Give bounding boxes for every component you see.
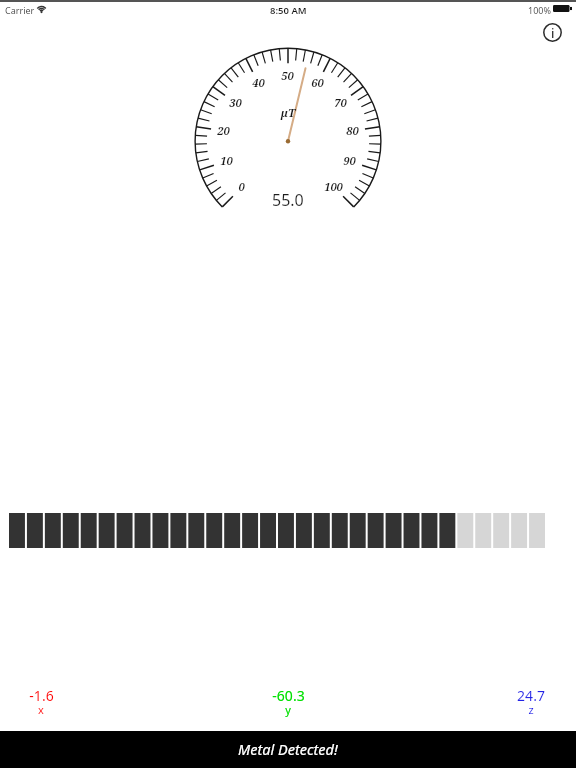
staticText: i: [551, 24, 555, 42]
staticText: -60.3: [272, 686, 305, 705]
staticText: 50: [281, 68, 294, 83]
staticText: y: [285, 702, 291, 717]
staticText: Carrier: [5, 4, 35, 16]
staticText: 100: [324, 179, 343, 194]
staticText: 40: [252, 75, 265, 90]
staticText: 80: [346, 123, 359, 138]
staticText: 100%: [528, 4, 551, 16]
staticText: Metal Detected!: [238, 739, 338, 759]
staticText: μT: [281, 105, 296, 120]
staticText: 20: [217, 123, 230, 138]
staticText: 30: [229, 95, 242, 110]
staticText: 90: [343, 153, 356, 168]
button[interactable]: Metal Detected!: [0, 731, 576, 768]
staticText: 0: [238, 179, 245, 194]
staticText: z: [528, 702, 534, 717]
staticText: 70: [334, 95, 347, 110]
staticText: 8:50 AM: [270, 4, 307, 17]
staticText: 10: [220, 153, 233, 168]
staticText: 60: [311, 75, 324, 90]
staticText: x: [38, 702, 44, 717]
staticText: 55.0: [272, 189, 304, 211]
button[interactable]: Info: [541, 21, 564, 44]
staticText: -1.6: [29, 686, 54, 705]
staticText: 24.7: [517, 686, 545, 705]
